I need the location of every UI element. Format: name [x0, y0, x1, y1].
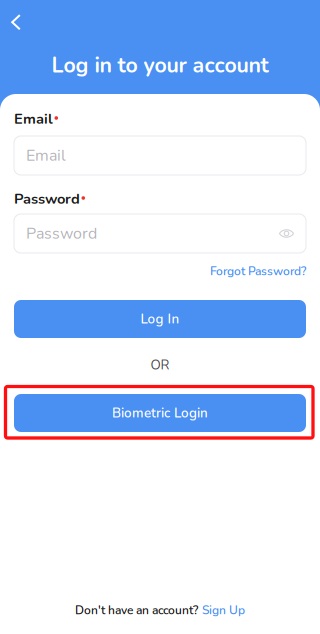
staticText: Don't have an account?: [75, 602, 198, 618]
button[interactable]: Show password: [279, 228, 294, 239]
staticText: Password: [14, 189, 80, 209]
button[interactable]: Sign Up: [202, 602, 245, 618]
staticText: Password: [26, 223, 97, 244]
button[interactable]: Log In: [14, 300, 306, 338]
staticText: Log in to your account: [51, 51, 268, 80]
button[interactable]: Back: [0, 0, 32, 41]
staticText: OR: [150, 356, 169, 374]
staticText: Sign Up: [202, 602, 245, 618]
staticText: Email: [14, 109, 53, 129]
staticText: Forgot Password?: [210, 263, 306, 279]
button[interactable]: Biometric Login: [14, 394, 306, 432]
button[interactable]: Forgot Password?: [210, 263, 306, 279]
staticText: Biometric Login: [112, 404, 208, 422]
staticText: Log In: [140, 310, 179, 328]
staticText: Email: [26, 145, 66, 166]
